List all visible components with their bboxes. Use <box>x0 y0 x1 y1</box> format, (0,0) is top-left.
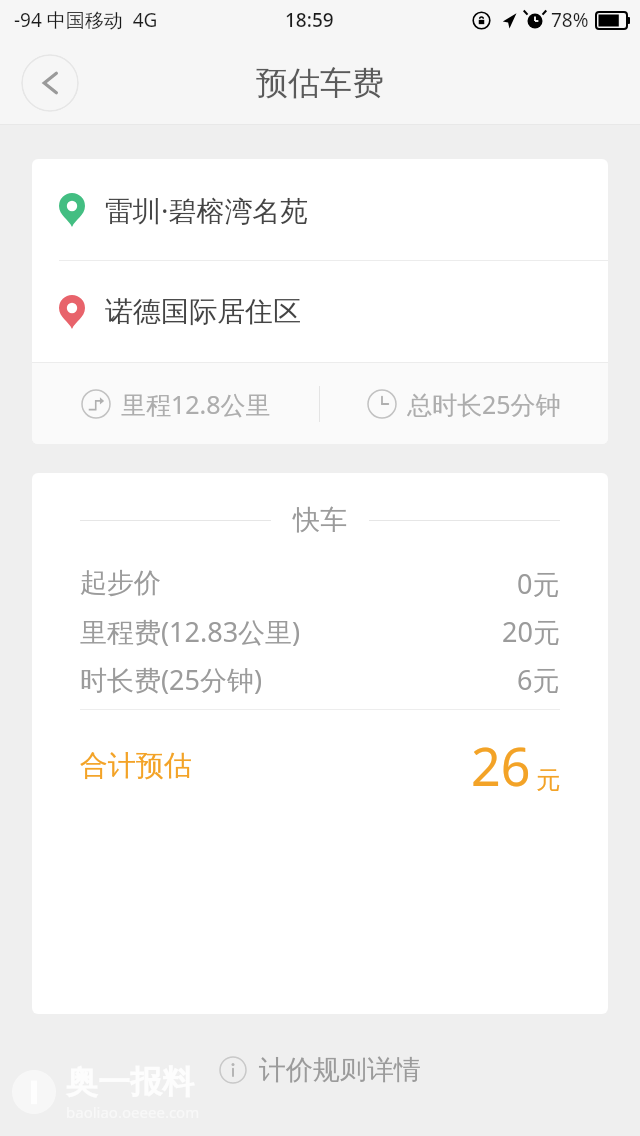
staticText: 18:59 <box>285 7 334 33</box>
staticText: 计价规则详情 <box>259 1053 421 1087</box>
staticText: 起步价 <box>80 566 161 600</box>
button[interactable]: Back <box>21 54 79 112</box>
staticText: 诺德国际居住区 <box>105 294 301 329</box>
staticText: 里程12.8公里 <box>121 387 271 421</box>
staticText: 奥一报料 <box>66 1062 194 1102</box>
staticText: 26 <box>471 730 531 801</box>
button[interactable]: 合计预估 <box>80 710 560 820</box>
staticText: -94 中国移动 4G <box>14 7 158 33</box>
button[interactable]: 诺德国际居住区 <box>32 261 608 362</box>
button[interactable]: 计价规则详情 <box>209 1047 431 1093</box>
staticText: 0元 <box>517 565 560 602</box>
staticText: 元 <box>536 765 560 795</box>
staticText: 总时长25分钟 <box>407 387 561 421</box>
staticText: 20元 <box>502 613 560 650</box>
button[interactable]: 雷圳·碧榕湾名苑 <box>32 159 608 260</box>
staticText: 时长费(25分钟) <box>80 661 263 698</box>
staticText: 雷圳·碧榕湾名苑 <box>105 191 309 229</box>
staticText: 78% <box>551 7 589 33</box>
staticText: 预估车费 <box>256 63 384 103</box>
staticText: 快车 <box>293 503 347 537</box>
staticText: 里程费(12.83公里) <box>80 613 301 650</box>
staticText: 6元 <box>517 661 560 698</box>
staticText: 合计预估 <box>80 748 192 783</box>
